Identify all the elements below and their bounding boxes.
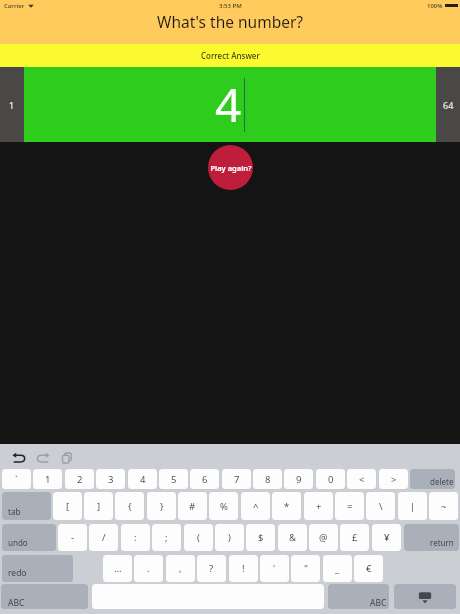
button[interactable]: ` xyxy=(2,469,31,489)
button[interactable]: 0 xyxy=(316,469,345,489)
staticText: 3:53 PM xyxy=(219,2,242,10)
staticText: ! xyxy=(242,562,245,575)
staticText: ~ xyxy=(441,500,447,513)
button[interactable]: £ xyxy=(340,524,369,551)
button[interactable]: - xyxy=(58,524,87,551)
button[interactable]: \ xyxy=(366,492,395,520)
button[interactable]: _ xyxy=(323,555,352,582)
button[interactable]: redo xyxy=(2,555,73,582)
staticText: 1 xyxy=(45,473,51,486)
button[interactable]: # xyxy=(178,492,207,520)
staticText: : xyxy=(134,531,137,544)
button[interactable]: = xyxy=(335,492,364,520)
button[interactable]: 7 xyxy=(222,469,251,489)
staticText: _ xyxy=(335,562,340,575)
button[interactable]: ; xyxy=(152,524,181,551)
button[interactable]: ( xyxy=(184,524,213,551)
button[interactable]: | xyxy=(398,492,427,520)
button[interactable]: " xyxy=(291,555,320,582)
staticText: tab xyxy=(8,506,21,517)
staticText: > xyxy=(391,473,397,486)
button[interactable]: ... xyxy=(103,555,132,582)
staticText: + xyxy=(316,500,322,513)
staticText: 1 xyxy=(9,99,15,111)
staticText: ' xyxy=(273,562,276,575)
staticText: return xyxy=(430,537,454,548)
button[interactable]: { xyxy=(115,492,144,520)
button[interactable]: Redo xyxy=(36,451,50,465)
staticText: 3 xyxy=(108,473,114,486)
button[interactable]: < xyxy=(347,469,376,489)
button[interactable]: ¥ xyxy=(372,524,401,551)
button[interactable]: ABC xyxy=(328,584,389,609)
staticText: 8 xyxy=(265,473,271,486)
button[interactable]: / xyxy=(89,524,118,551)
staticText: % xyxy=(220,500,228,513)
staticText: What's the number? xyxy=(157,11,304,32)
staticText: Correct Answer xyxy=(201,50,260,61)
staticText: ) xyxy=(228,531,231,544)
button[interactable]: 6 xyxy=(190,469,219,489)
button[interactable]: > xyxy=(379,469,408,489)
staticText: } xyxy=(160,500,164,513)
staticText: 2 xyxy=(77,473,83,486)
button[interactable]: 1 xyxy=(33,469,62,489)
staticText: \ xyxy=(379,500,383,513)
button[interactable]: ^ xyxy=(241,492,270,520)
button[interactable]: 8 xyxy=(253,469,282,489)
staticText: 64 xyxy=(443,99,454,111)
staticText: " xyxy=(304,562,308,575)
button[interactable]: 5 xyxy=(159,469,188,489)
button[interactable]: @ xyxy=(309,524,338,551)
button[interactable]: [ xyxy=(53,492,82,520)
staticText: . xyxy=(147,562,150,575)
button[interactable]: Hide keyboard xyxy=(394,584,456,609)
button[interactable]: € xyxy=(354,555,383,582)
button[interactable]: Play again? xyxy=(208,145,253,190)
button[interactable]: Undo xyxy=(12,451,26,465)
staticText: $ xyxy=(258,531,264,544)
button[interactable]: tab xyxy=(2,492,51,520)
button[interactable]: } xyxy=(147,492,176,520)
button[interactable]: 2 xyxy=(65,469,94,489)
button[interactable]: return xyxy=(404,524,459,551)
staticText: delete xyxy=(430,476,454,487)
button[interactable]: 4 xyxy=(128,469,157,489)
button[interactable]: ' xyxy=(260,555,289,582)
button[interactable]: Paste xyxy=(60,451,74,465)
staticText: [ xyxy=(66,500,70,513)
staticText: ] xyxy=(97,500,101,513)
staticText: Play again? xyxy=(210,163,252,173)
button[interactable]: ~ xyxy=(429,492,458,520)
staticText: ... xyxy=(114,562,122,575)
button[interactable]: : xyxy=(121,524,150,551)
button[interactable]: + xyxy=(304,492,333,520)
staticText: * xyxy=(284,500,290,513)
staticText: ` xyxy=(15,473,18,486)
button[interactable]: delete xyxy=(410,469,455,489)
staticText: # xyxy=(189,500,196,513)
button[interactable]: ! xyxy=(229,555,258,582)
button[interactable]: ABC xyxy=(1,584,88,609)
staticText: ABC xyxy=(370,597,387,609)
button[interactable]: 4 xyxy=(24,67,436,142)
button[interactable]: undo xyxy=(2,524,56,551)
staticText: / xyxy=(102,531,106,544)
button[interactable]: 9 xyxy=(284,469,313,489)
button[interactable]: % xyxy=(209,492,238,520)
button[interactable]: & xyxy=(278,524,307,551)
staticText: 4 xyxy=(215,73,242,136)
button[interactable]: $ xyxy=(246,524,275,551)
button[interactable]: ] xyxy=(84,492,113,520)
staticText: & xyxy=(289,531,296,544)
button[interactable]: ? xyxy=(197,555,226,582)
button[interactable]: , xyxy=(166,555,195,582)
staticText: 9 xyxy=(296,473,302,486)
staticText: 7 xyxy=(234,473,240,486)
button[interactable]: 3 xyxy=(96,469,125,489)
button[interactable]: ) xyxy=(215,524,244,551)
button[interactable]: * xyxy=(272,492,301,520)
staticText: @ xyxy=(319,531,328,544)
button[interactable]: . xyxy=(134,555,163,582)
